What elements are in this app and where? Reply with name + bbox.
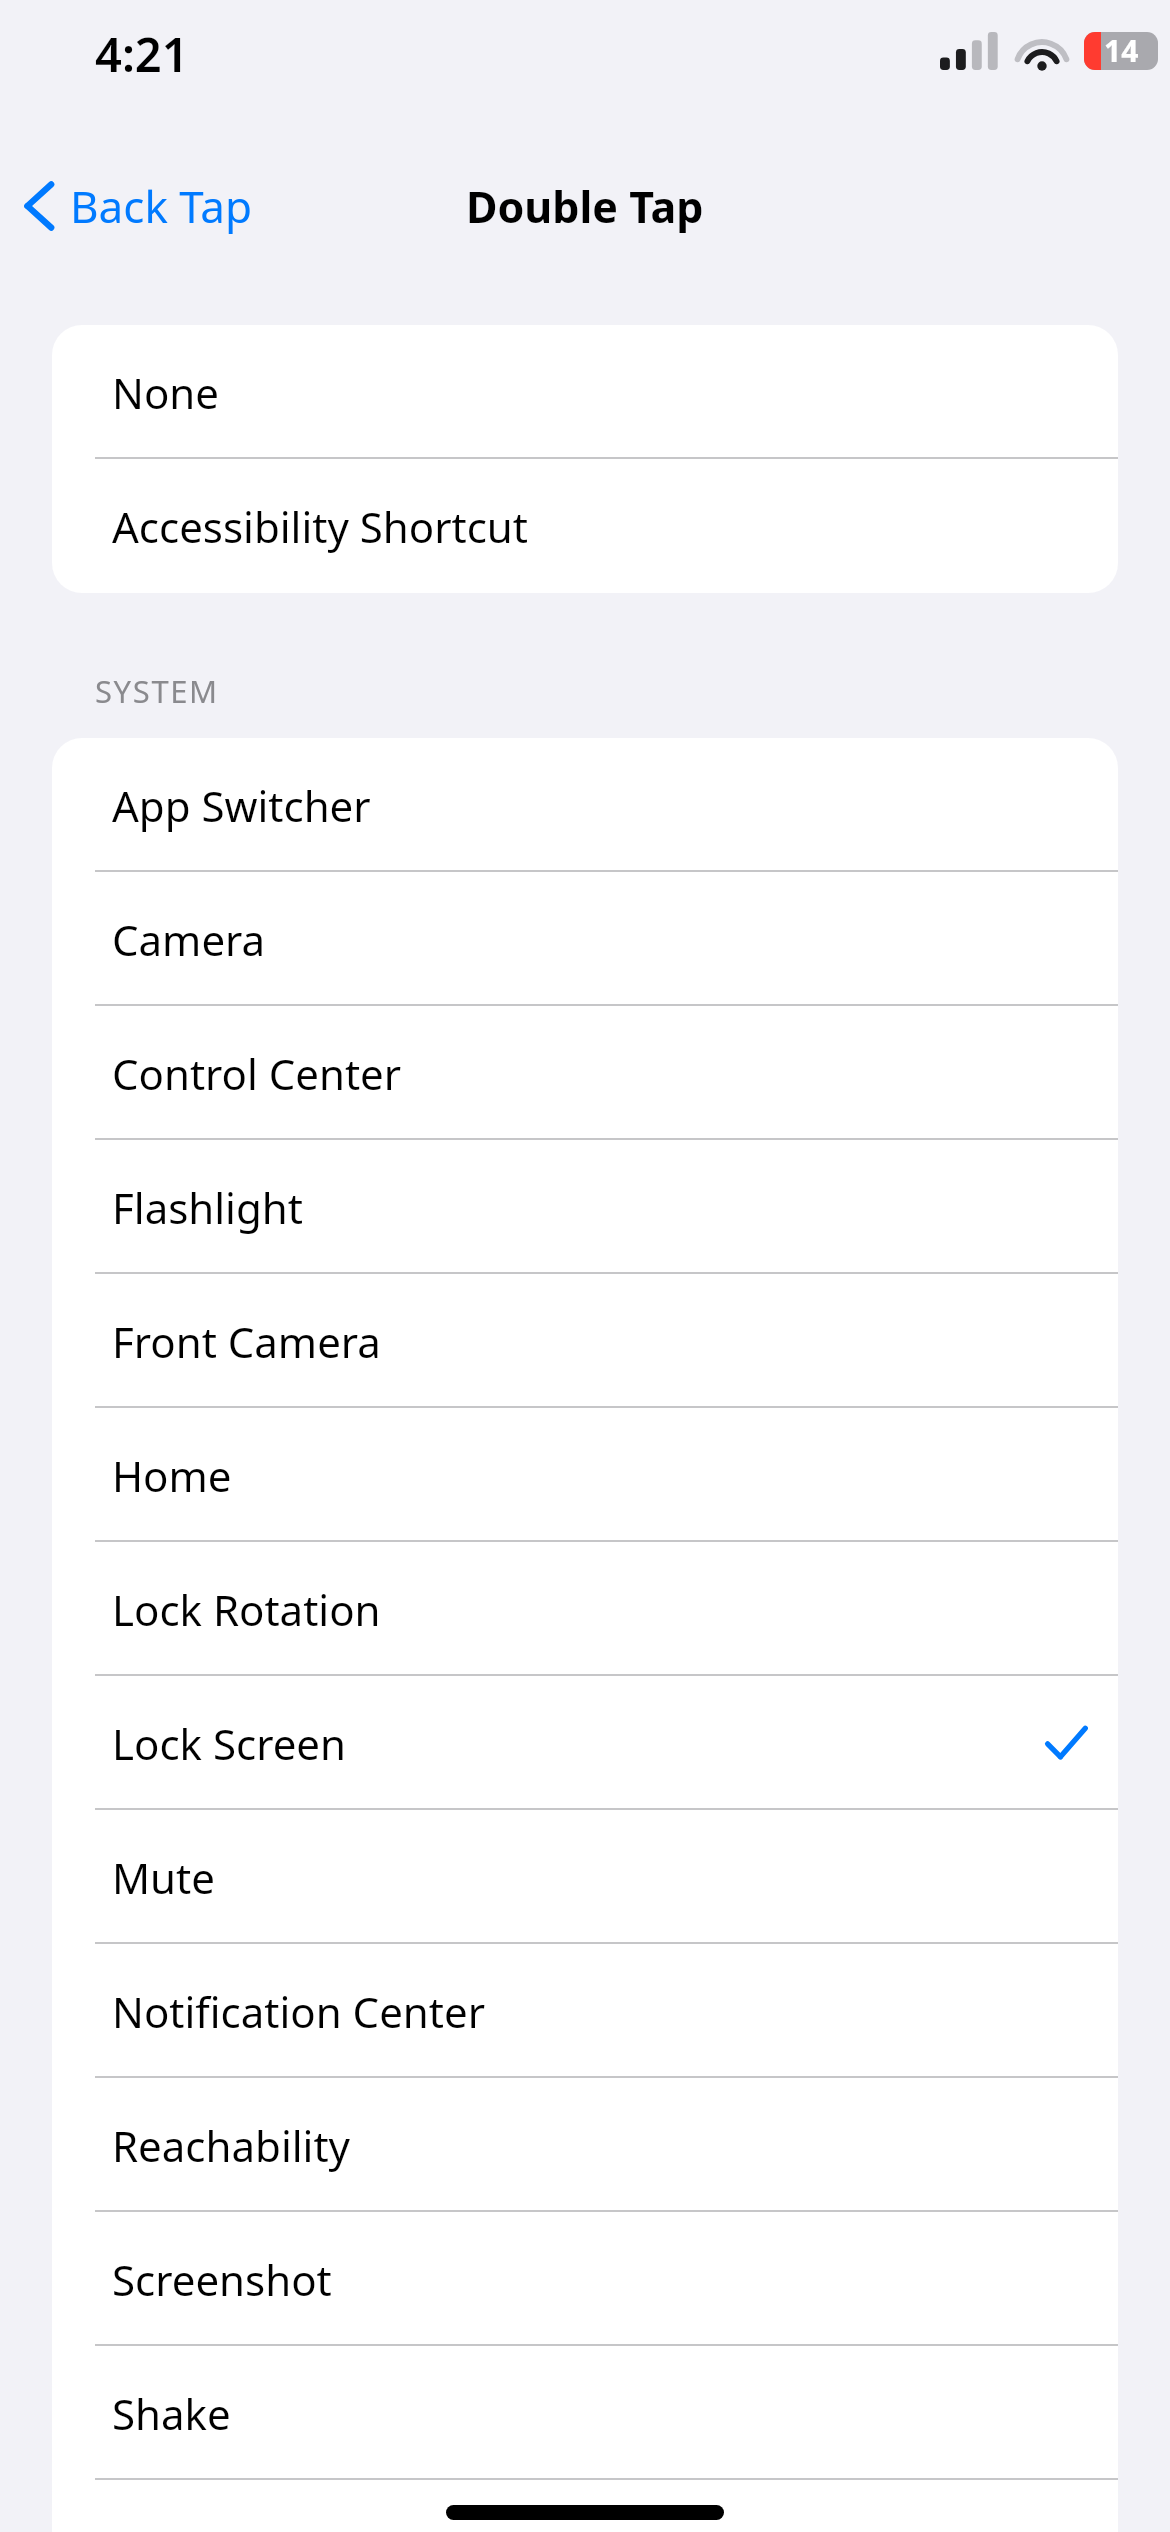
staticText: Accessibility Shortcut <box>112 498 528 555</box>
button[interactable]: Camera <box>52 872 1118 1006</box>
staticText: 4:21 <box>95 22 189 76</box>
staticText: Mute <box>112 1849 215 1906</box>
staticText: Front Camera <box>112 1313 381 1370</box>
button[interactable]: Screenshot <box>52 2212 1118 2346</box>
staticText: Flashlight <box>112 1179 303 1236</box>
staticText: None <box>112 364 219 421</box>
staticText: Home <box>112 1447 232 1504</box>
button[interactable]: Front Camera <box>52 1274 1118 1408</box>
staticText: Back Tap <box>70 176 253 236</box>
button[interactable]: Siri <box>52 2480 1118 2532</box>
staticText: Camera <box>112 911 266 968</box>
button[interactable]: App Switcher <box>52 738 1118 872</box>
button[interactable]: Lock Screen <box>52 1676 1118 1810</box>
staticText: Double Tap <box>466 177 704 236</box>
button[interactable]: Home <box>52 1408 1118 1542</box>
staticText: SYSTEM <box>95 670 219 712</box>
button[interactable]: Flashlight <box>52 1140 1118 1274</box>
staticText: Screenshot <box>112 2251 332 2308</box>
button[interactable]: Shake <box>52 2346 1118 2480</box>
staticText: Lock Screen <box>112 1715 346 1772</box>
staticText: 14 <box>1104 30 1139 71</box>
button[interactable]: Lock Rotation <box>52 1542 1118 1676</box>
staticText: Lock Rotation <box>112 1581 381 1638</box>
staticText: Shake <box>112 2385 231 2442</box>
button[interactable]: Notification Center <box>52 1944 1118 2078</box>
button[interactable]: Mute <box>52 1810 1118 1944</box>
staticText: App Switcher <box>112 777 371 834</box>
staticText: Notification Center <box>112 1983 486 2040</box>
staticText: Control Center <box>112 1045 402 1102</box>
staticText: Reachability <box>112 2117 350 2174</box>
button[interactable]: None <box>52 325 1118 459</box>
button[interactable]: Back Tap <box>18 168 257 244</box>
button[interactable]: Accessibility Shortcut <box>52 459 1118 593</box>
button[interactable]: Reachability <box>52 2078 1118 2212</box>
button[interactable]: Control Center <box>52 1006 1118 1140</box>
